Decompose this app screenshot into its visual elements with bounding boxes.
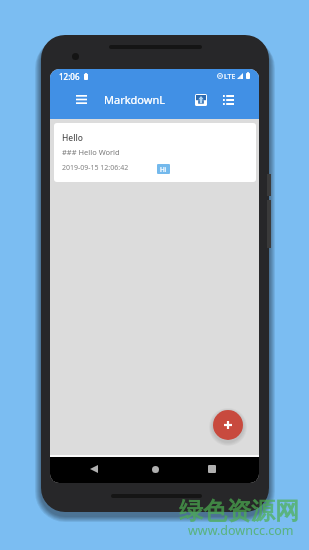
staticText: 12:06	[59, 71, 80, 82]
button[interactable]: Hello	[54, 123, 256, 182]
staticText: www.downcc.com	[188, 522, 294, 539]
button[interactable]: Export	[188, 87, 213, 112]
staticText: LTE	[224, 72, 236, 82]
staticText: MarkdownL	[104, 92, 165, 107]
staticText: ### Hello World	[62, 147, 120, 157]
button[interactable]: Recent apps	[205, 462, 219, 476]
staticText: 绿色资源网	[179, 496, 299, 526]
button[interactable]: Back	[87, 462, 101, 476]
staticText: Hello	[62, 132, 84, 144]
button[interactable]: Menu	[69, 87, 94, 112]
staticText: Hi	[160, 165, 167, 174]
button[interactable]: List view	[216, 87, 241, 112]
button[interactable]: Home	[148, 462, 162, 476]
staticText: 2019-09-15 12:06:42	[62, 163, 129, 173]
button[interactable]: Add note	[213, 410, 243, 440]
